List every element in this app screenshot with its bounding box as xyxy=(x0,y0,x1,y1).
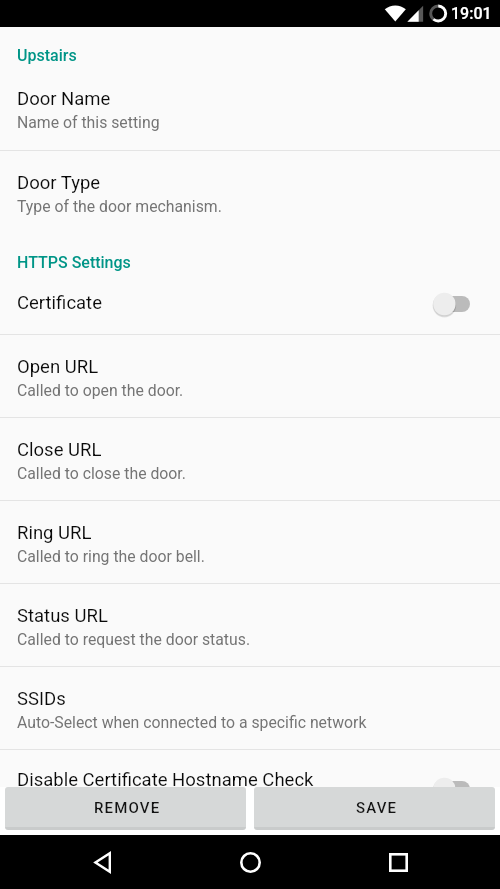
button[interactable]: Door Type xyxy=(0,151,500,233)
button[interactable]: Disable Certificate Hostname Check xyxy=(0,750,500,787)
staticText: Called to open the door. xyxy=(17,381,184,400)
staticText: HTTPS Settings xyxy=(17,253,131,272)
button[interactable]: Toggle xyxy=(433,775,470,787)
button[interactable]: Back xyxy=(80,840,124,884)
button[interactable]: Open URL xyxy=(0,335,500,417)
staticText: Close URL xyxy=(17,439,102,461)
staticText: Auto-Select when connected to a specific… xyxy=(17,713,367,732)
staticText: Called to ring the door bell. xyxy=(17,547,205,566)
staticText: Status URL xyxy=(17,605,108,627)
staticText: REMOVE xyxy=(94,799,161,817)
button[interactable]: Door Name xyxy=(0,68,500,150)
button[interactable]: SAVE xyxy=(254,787,495,830)
staticText: Called to request the door status. xyxy=(17,630,251,649)
button[interactable]: Status URL xyxy=(0,584,500,666)
staticText: Ring URL xyxy=(17,522,92,544)
staticText: Called to close the door. xyxy=(17,464,186,483)
staticText: SAVE xyxy=(356,799,398,817)
button[interactable]: Home xyxy=(228,840,272,884)
staticText: Door Type xyxy=(17,172,101,194)
staticText: Upstairs xyxy=(17,46,77,65)
button[interactable]: REMOVE xyxy=(5,787,246,830)
staticText: Open URL xyxy=(17,356,99,378)
staticText: Type of the door mechanism. xyxy=(17,197,222,216)
button[interactable]: SSIDs xyxy=(0,667,500,749)
staticText: Name of this setting xyxy=(17,113,160,132)
button[interactable]: Certificate xyxy=(0,282,500,334)
button[interactable]: Ring URL xyxy=(0,501,500,583)
button[interactable]: Recent apps xyxy=(376,840,420,884)
staticText: Disable Certificate Hostname Check xyxy=(17,769,314,787)
button[interactable]: Toggle xyxy=(433,290,470,318)
staticText: SSIDs xyxy=(17,688,66,710)
staticText: Door Name xyxy=(17,88,111,110)
button[interactable]: Close URL xyxy=(0,418,500,500)
staticText: Certificate xyxy=(17,292,102,314)
staticText: 19:01 xyxy=(451,4,492,23)
